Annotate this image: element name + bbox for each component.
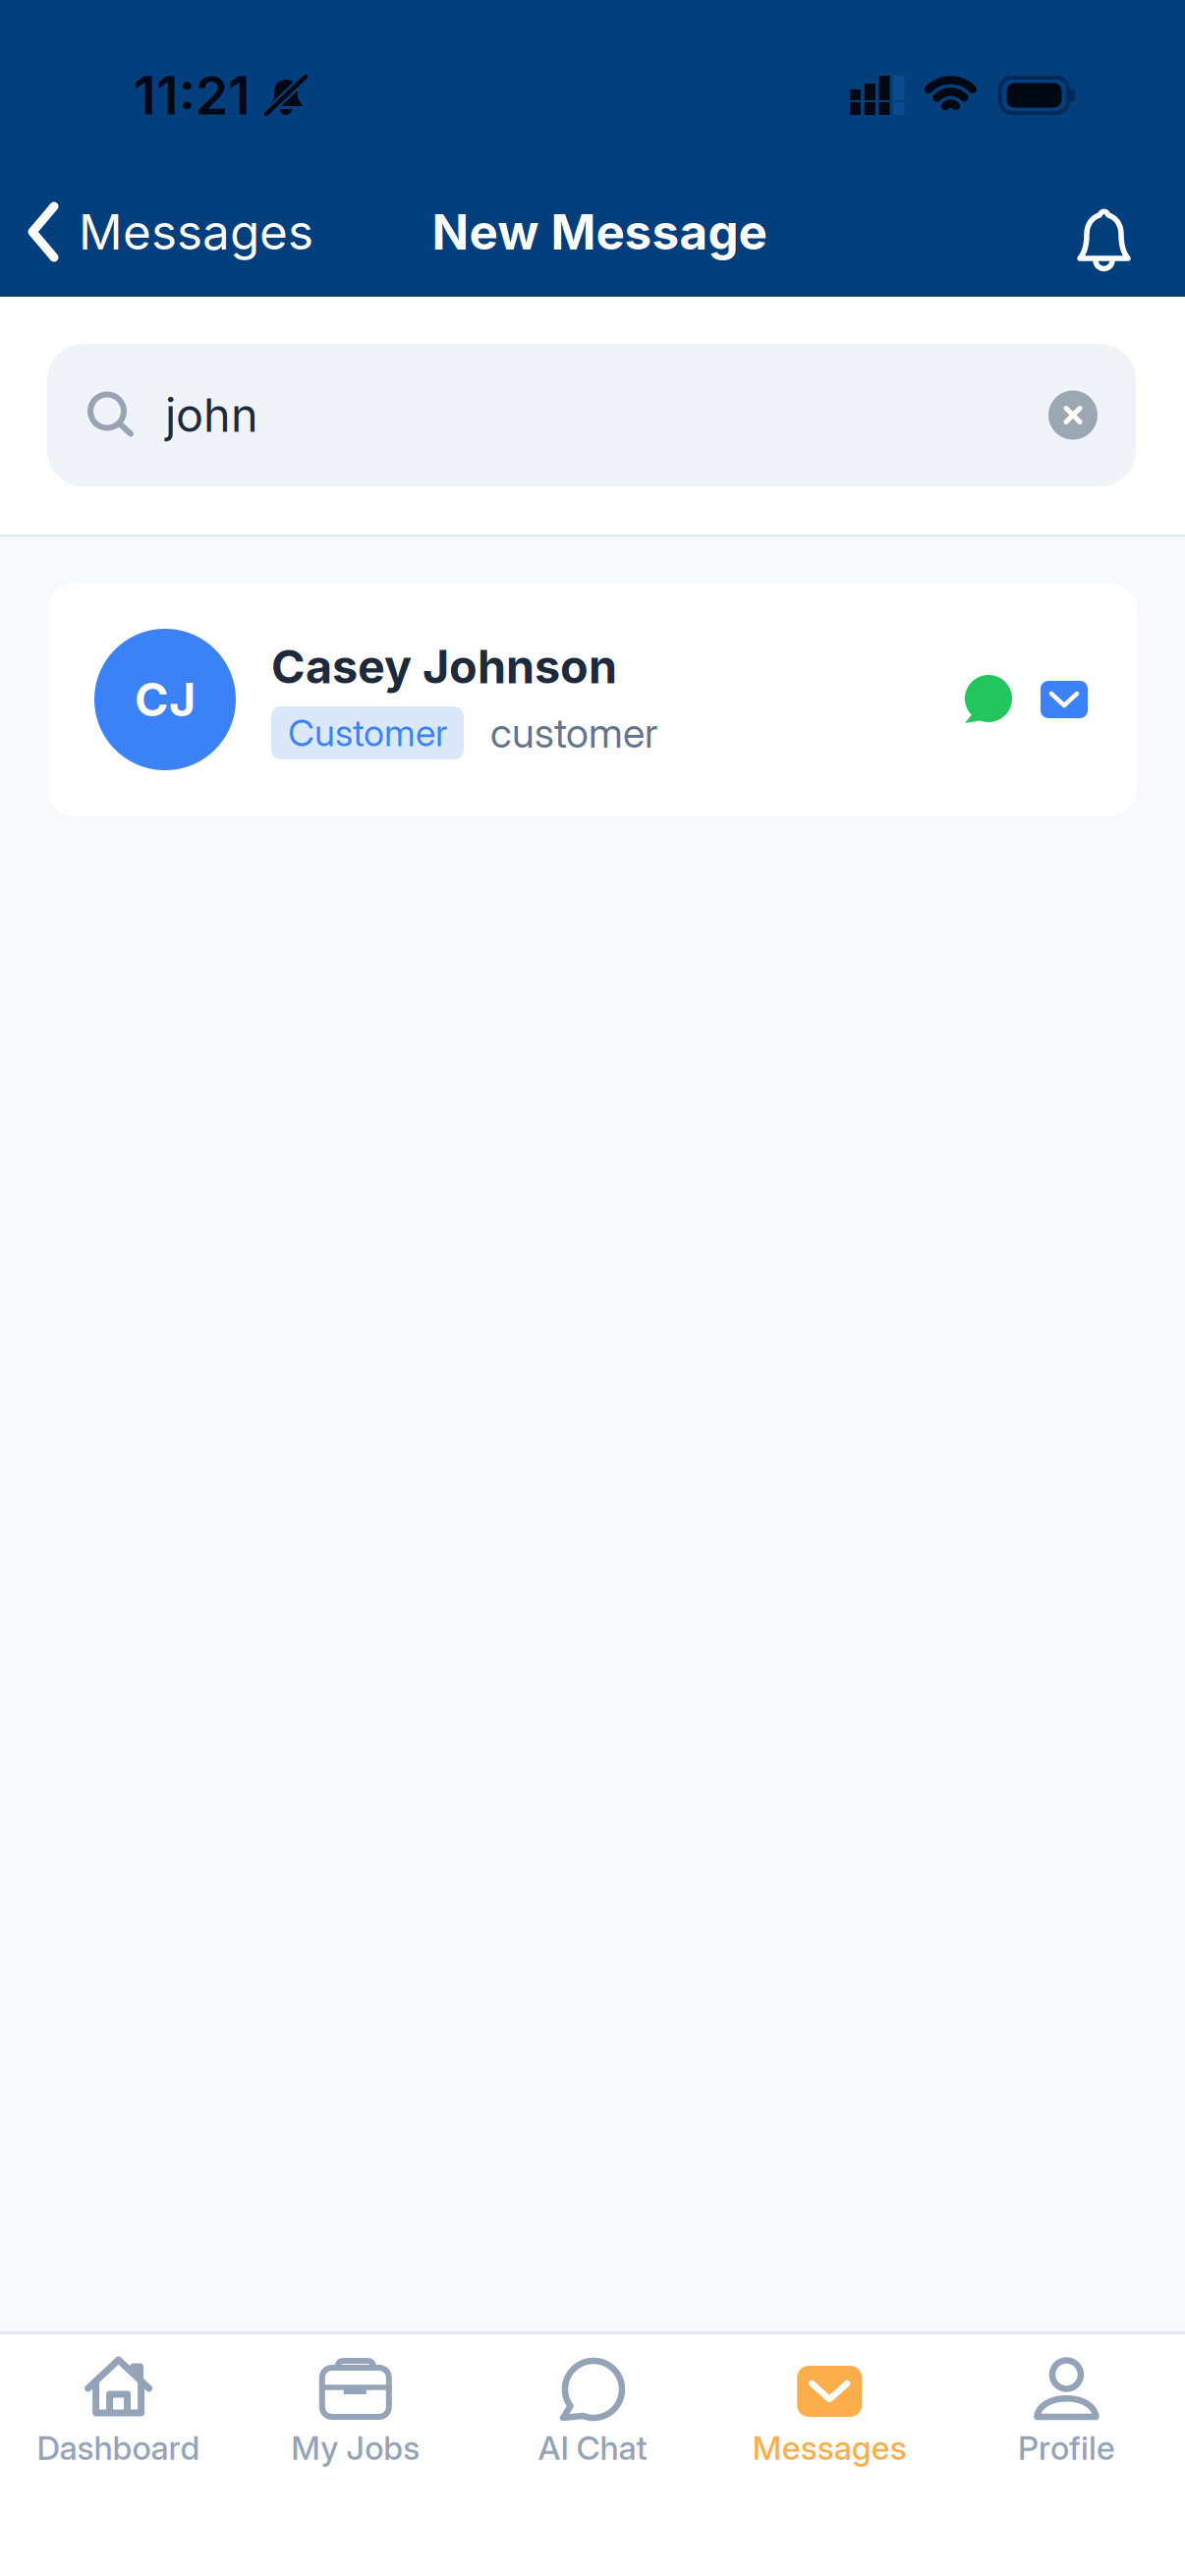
button[interactable]: Clear search [1048, 391, 1098, 440]
staticText: Casey Johnson [271, 640, 617, 694]
button[interactable]: Dashboard [0, 2334, 237, 2481]
staticText: CJ [135, 672, 196, 727]
staticText: Customer [288, 711, 447, 755]
staticText: Messages [752, 2429, 907, 2467]
button[interactable]: My Jobs [237, 2334, 474, 2481]
staticText: john [165, 388, 258, 442]
button[interactable]: Messages [711, 2334, 948, 2481]
staticText: AI Chat [538, 2429, 647, 2467]
button[interactable]: Notifications [1077, 174, 1185, 290]
staticText: Profile [1018, 2429, 1115, 2467]
button[interactable]: CJ [48, 583, 1137, 816]
staticText: 11:21 [134, 64, 251, 126]
button[interactable]: Profile [948, 2334, 1185, 2481]
staticText: Dashboard [37, 2429, 200, 2467]
staticText: New Message [432, 203, 767, 260]
staticText: Messages [79, 203, 313, 260]
button[interactable]: AI Chat [474, 2334, 711, 2481]
button[interactable]: Messages [0, 184, 313, 280]
staticText: My Jobs [291, 2429, 420, 2467]
staticText: customer [490, 709, 657, 757]
